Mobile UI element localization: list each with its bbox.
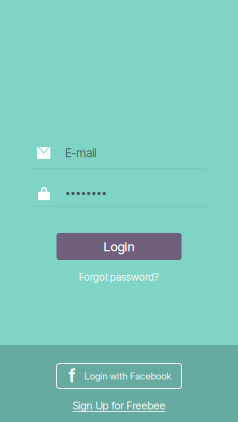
staticText: Sign Up for Freebee	[72, 399, 165, 412]
button[interactable]: f	[56, 363, 181, 388]
button[interactable]: E-mail	[0, 0, 238, 159]
button[interactable]: Forgot password?	[79, 271, 159, 283]
staticText: Login with Facebook	[84, 370, 171, 382]
button[interactable]: Login	[56, 233, 181, 260]
staticText: f	[68, 365, 75, 386]
button[interactable]: Sign Up for Freebee	[72, 399, 165, 411]
button[interactable]: Password	[0, 169, 238, 201]
staticText: Forgot password?	[79, 271, 159, 283]
staticText: E-mail	[65, 146, 96, 160]
staticText: Login	[103, 239, 134, 254]
